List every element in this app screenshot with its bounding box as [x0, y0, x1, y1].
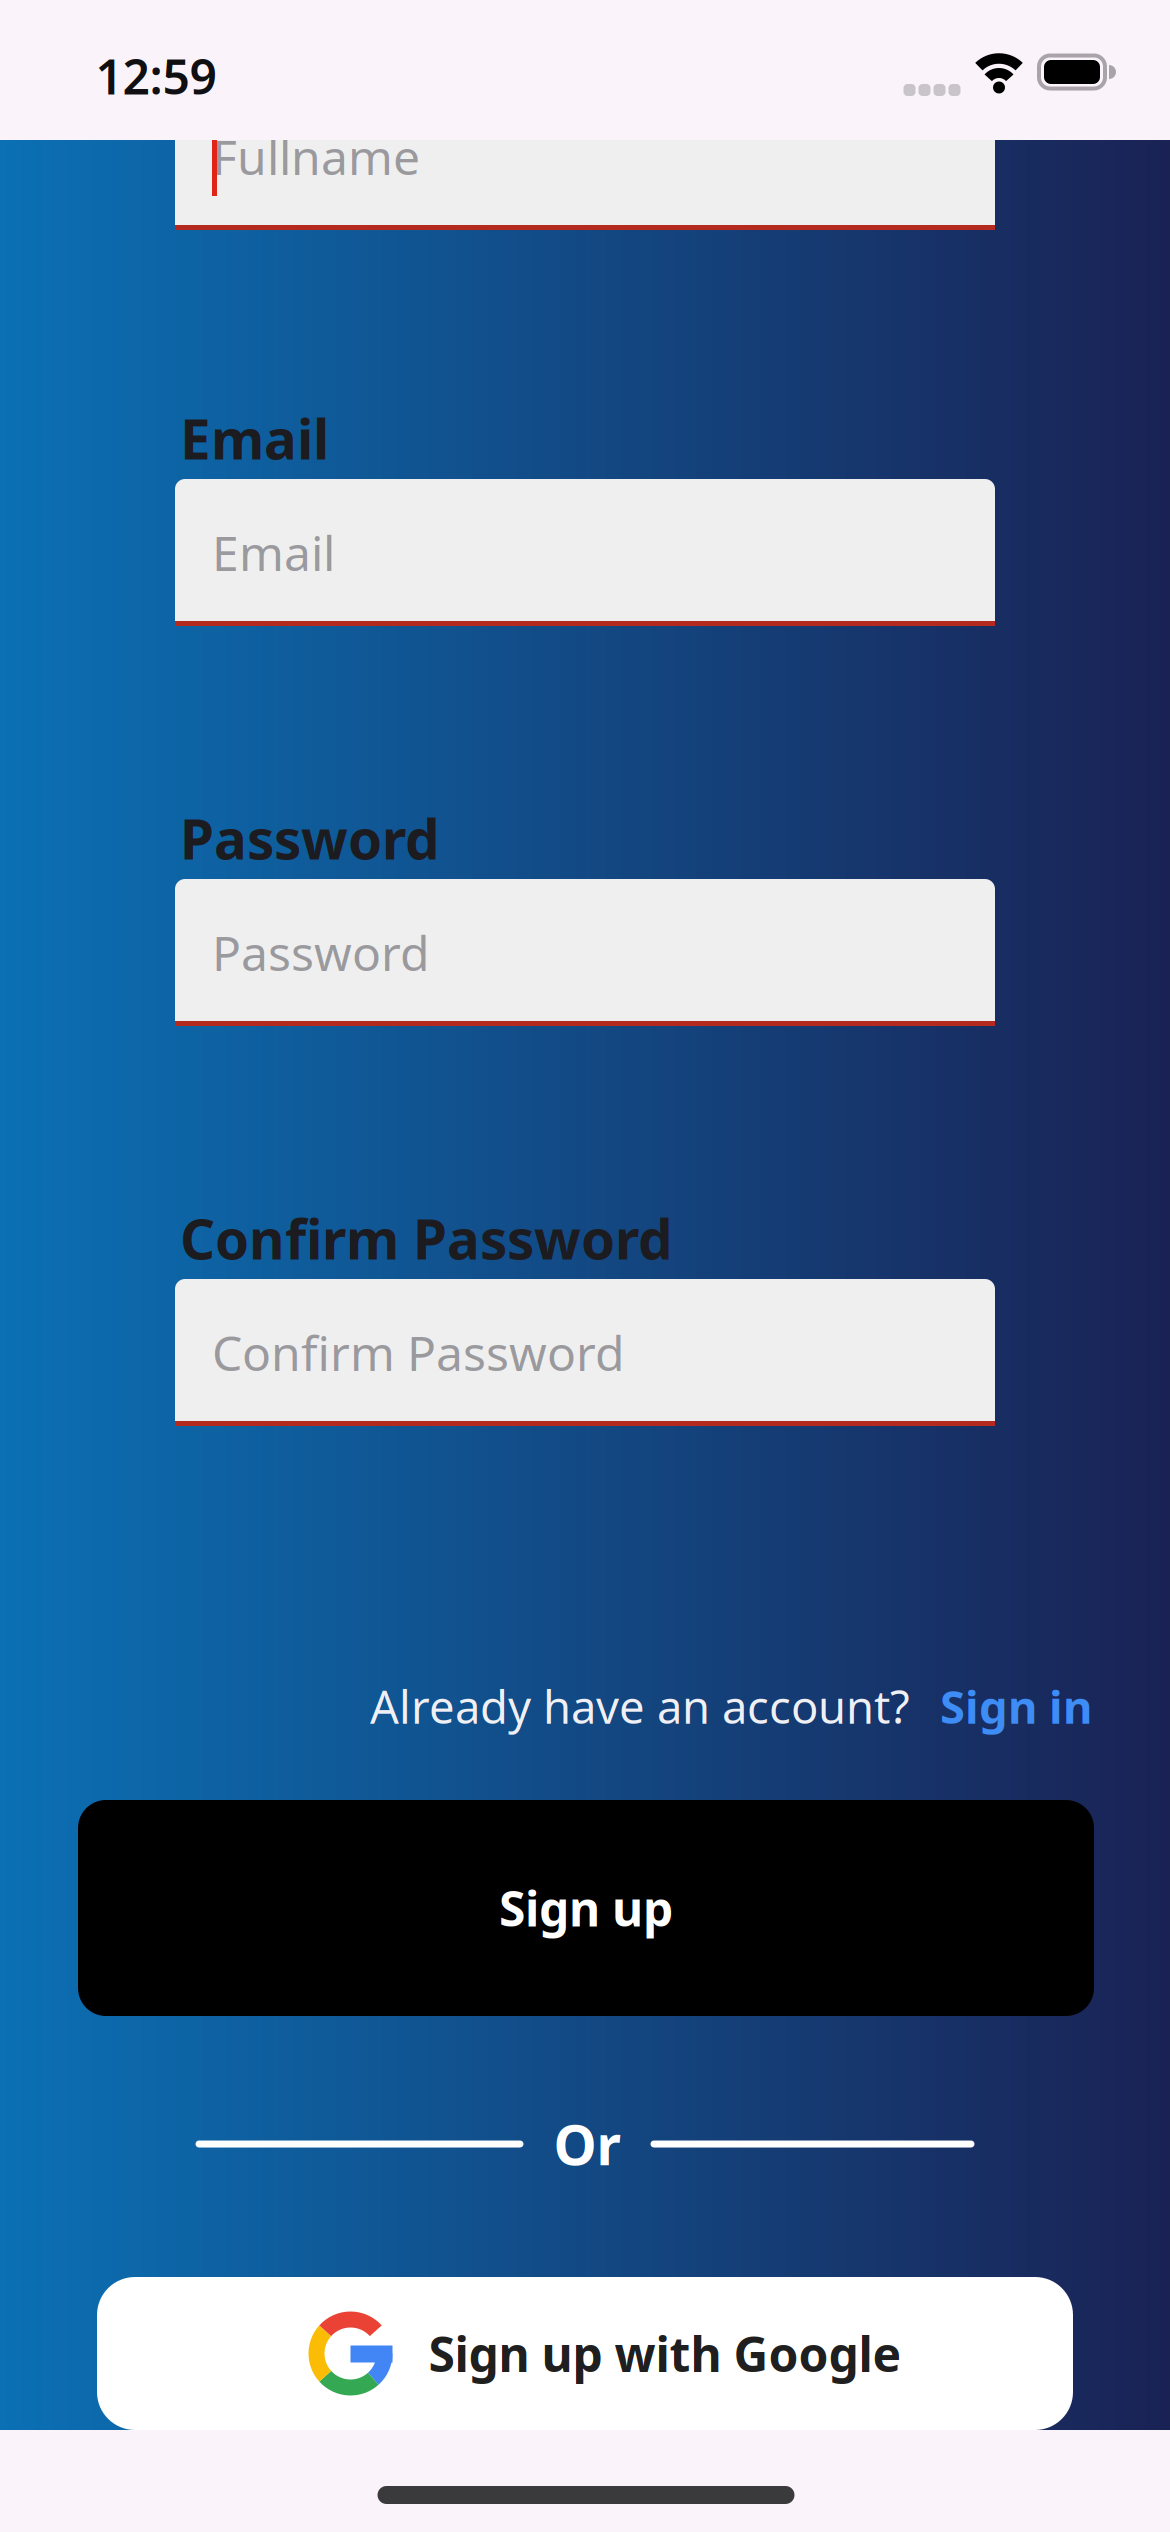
staticText: Or — [553, 2108, 620, 2180]
button[interactable]: Sign up with Google — [97, 2277, 1073, 2430]
staticText: Already have an account? — [370, 1676, 910, 1736]
button[interactable]: Fullname — [175, 83, 995, 230]
staticText: Confirm Password — [212, 1321, 625, 1384]
staticText: Confirm Password — [180, 1202, 673, 1275]
button[interactable]: Sign in — [940, 1676, 1092, 1736]
staticText: Password — [180, 802, 440, 875]
staticText: Sign in — [940, 1676, 1092, 1736]
staticText: Password — [212, 921, 430, 984]
button[interactable]: Password — [175, 879, 995, 1026]
button[interactable]: Email — [175, 479, 995, 626]
staticText: Email — [180, 402, 329, 475]
staticText: Email — [212, 521, 335, 584]
button[interactable]: Confirm Password — [175, 1279, 995, 1426]
staticText: Sign up with Google — [428, 2322, 901, 2385]
staticText: Fullname — [212, 125, 420, 188]
button[interactable]: Sign up — [78, 1800, 1094, 2016]
staticText: Sign up — [499, 1876, 673, 1940]
staticText: 12:59 — [95, 44, 216, 108]
